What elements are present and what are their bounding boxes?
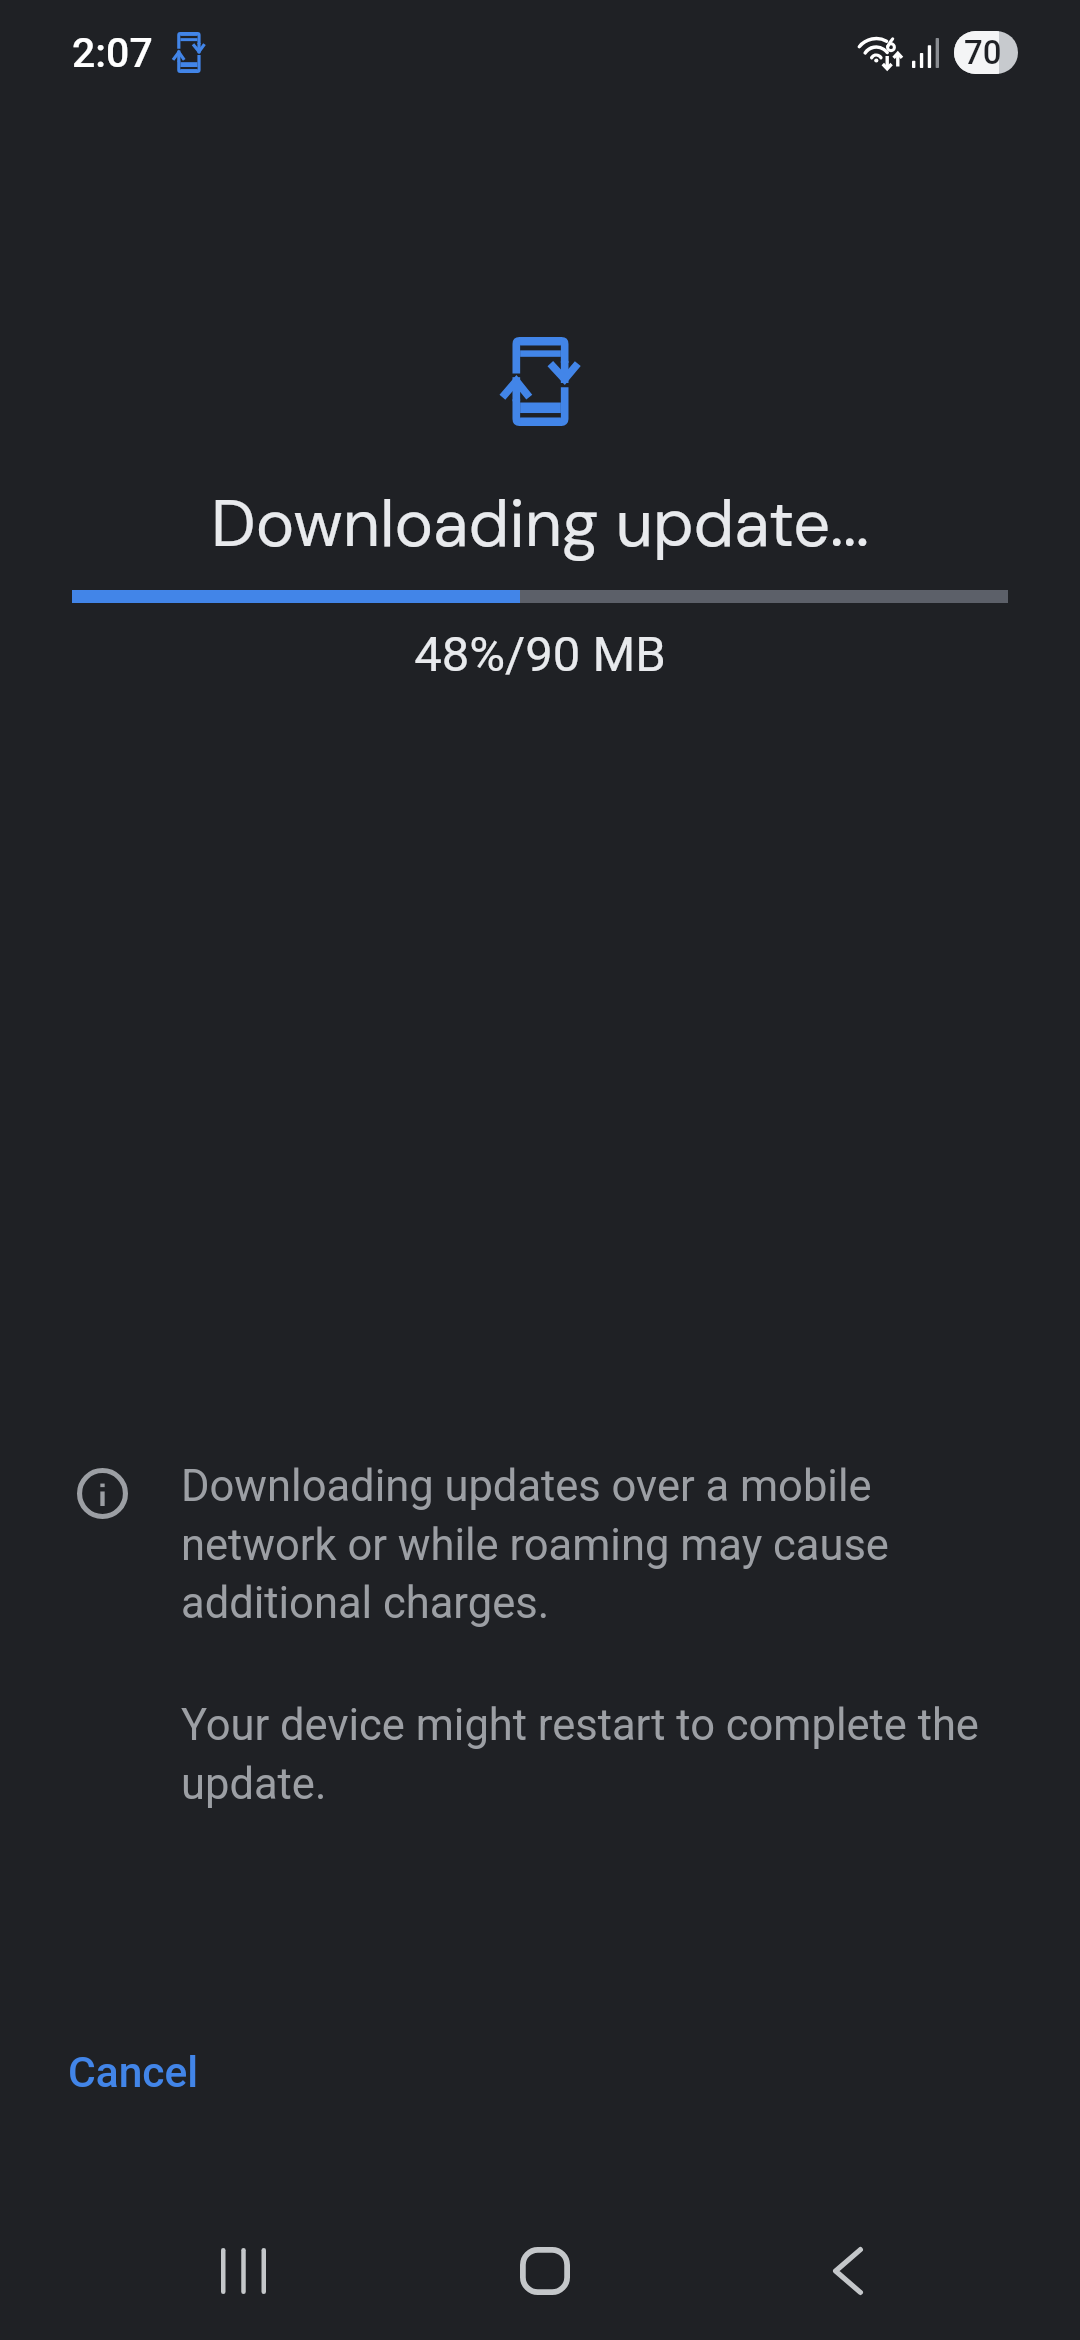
button[interactable]: Back bbox=[788, 2212, 908, 2329]
button[interactable]: Home bbox=[485, 2212, 605, 2329]
staticText: Downloading update... bbox=[0, 482, 1080, 567]
button[interactable]: Cancel bbox=[44, 2032, 223, 2114]
staticText: 2:07 bbox=[72, 29, 153, 77]
staticText: Your device might restart to complete th… bbox=[181, 1700, 996, 1810]
staticText: Cancel bbox=[68, 2048, 199, 2098]
staticText: Downloading updates over a mobile networ… bbox=[181, 1461, 996, 1629]
button[interactable]: Recent apps bbox=[183, 2212, 303, 2329]
staticText: 70 bbox=[964, 33, 1002, 72]
staticText: 48%/90 MB bbox=[0, 626, 1080, 683]
